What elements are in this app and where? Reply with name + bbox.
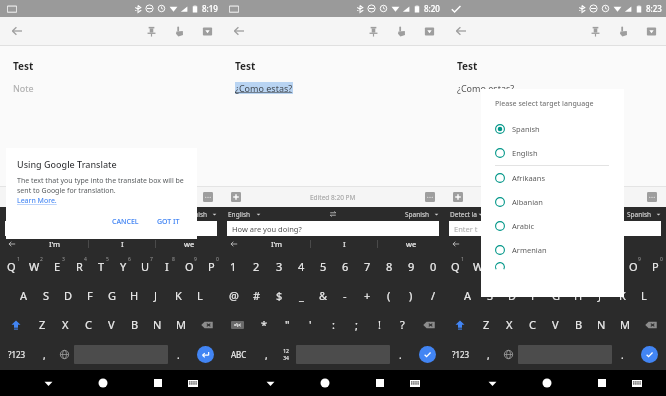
button[interactable]: 5 bbox=[312, 252, 334, 281]
button[interactable]: Enter bbox=[188, 339, 222, 370]
button[interactable]: Backspace bbox=[636, 310, 666, 339]
button[interactable]: Back bbox=[8, 22, 26, 40]
button[interactable]: ! bbox=[368, 310, 391, 339]
button[interactable]: ?123 bbox=[0, 339, 34, 370]
button[interactable]: 0 bbox=[422, 252, 444, 281]
button[interactable]: F bbox=[523, 281, 545, 310]
button[interactable]: 2 bbox=[245, 252, 268, 281]
button[interactable]: Back bbox=[257, 370, 283, 396]
button[interactable]: . bbox=[168, 339, 188, 370]
button[interactable]: ( bbox=[378, 281, 400, 310]
button[interactable]: X bbox=[498, 310, 521, 339]
button[interactable]: Add bbox=[451, 190, 465, 204]
button[interactable]: Backspace bbox=[414, 310, 444, 339]
button[interactable]: Arabic bbox=[495, 214, 624, 238]
button[interactable]: Language bbox=[498, 339, 518, 370]
button[interactable]: Numbers bbox=[276, 339, 296, 370]
button[interactable]: V bbox=[100, 310, 123, 339]
button[interactable]: we bbox=[156, 236, 222, 252]
button[interactable]: English bbox=[228, 210, 251, 219]
button[interactable]: - bbox=[334, 281, 356, 310]
button[interactable]: Recents bbox=[145, 370, 171, 396]
button[interactable]: W bbox=[23, 252, 46, 281]
button[interactable]: Reminder bbox=[614, 22, 632, 40]
button[interactable]: Learn More. bbox=[17, 196, 57, 206]
button[interactable]: / bbox=[422, 281, 444, 310]
button[interactable]: P bbox=[200, 252, 222, 281]
button[interactable]: 1 bbox=[222, 252, 245, 281]
button[interactable]: R bbox=[68, 252, 90, 281]
button[interactable]: Enter t bbox=[449, 221, 661, 236]
button[interactable]: , bbox=[34, 339, 54, 370]
button[interactable]: E bbox=[490, 252, 512, 281]
button[interactable]: More options bbox=[423, 190, 437, 204]
button[interactable]: ? bbox=[391, 310, 414, 339]
button[interactable]: Armenian bbox=[495, 238, 624, 262]
button[interactable]: Back bbox=[479, 370, 505, 396]
button[interactable]: # bbox=[245, 281, 268, 310]
button[interactable]: Archive bbox=[642, 22, 660, 40]
button[interactable]: How are you doing? bbox=[5, 221, 217, 236]
button[interactable]: A bbox=[456, 281, 479, 310]
button[interactable]: B bbox=[123, 310, 146, 339]
button[interactable]: 9 bbox=[400, 252, 422, 281]
button[interactable]: A bbox=[12, 281, 35, 310]
button[interactable]: S bbox=[35, 281, 57, 310]
button[interactable]: ; bbox=[345, 310, 368, 339]
button[interactable]: L bbox=[189, 281, 211, 310]
button[interactable]: + bbox=[356, 281, 378, 310]
button[interactable]: T bbox=[90, 252, 112, 281]
button[interactable]: U bbox=[134, 252, 156, 281]
button[interactable]: X bbox=[54, 310, 77, 339]
button[interactable]: F bbox=[79, 281, 101, 310]
button[interactable]: . bbox=[390, 339, 410, 370]
button[interactable]: English bbox=[495, 141, 624, 165]
button[interactable]: H bbox=[123, 281, 145, 310]
button[interactable]: =\< bbox=[222, 310, 253, 339]
button[interactable]: W bbox=[467, 252, 490, 281]
button[interactable]: Z bbox=[475, 310, 498, 339]
button[interactable]: Back bbox=[230, 22, 248, 40]
button[interactable]: N bbox=[590, 310, 613, 339]
button[interactable]: . bbox=[612, 339, 632, 370]
button[interactable]: Y bbox=[112, 252, 134, 281]
button[interactable]: 8 bbox=[378, 252, 400, 281]
button[interactable]: Home bbox=[534, 370, 560, 396]
button[interactable]: 4 bbox=[290, 252, 312, 281]
button[interactable]: O bbox=[178, 252, 200, 281]
button[interactable]: Spanish bbox=[495, 117, 624, 141]
button[interactable]: : bbox=[322, 310, 345, 339]
button[interactable]: G bbox=[101, 281, 123, 310]
button[interactable]: H bbox=[567, 281, 589, 310]
button[interactable]: P bbox=[644, 252, 666, 281]
button[interactable]: Language bbox=[54, 339, 74, 370]
button[interactable]: B bbox=[567, 310, 590, 339]
button[interactable]: K bbox=[611, 281, 633, 310]
button[interactable]: 7 bbox=[356, 252, 378, 281]
button[interactable]: ' bbox=[299, 310, 322, 339]
button[interactable]: ) bbox=[400, 281, 422, 310]
button[interactable]: O bbox=[622, 252, 644, 281]
button[interactable]: J bbox=[589, 281, 611, 310]
button[interactable]: ABC bbox=[222, 339, 256, 370]
button[interactable]: Back bbox=[35, 370, 61, 396]
button[interactable]: Detect la bbox=[450, 210, 477, 219]
button[interactable]: G bbox=[545, 281, 567, 310]
button[interactable]: Spanish bbox=[183, 210, 208, 219]
button[interactable]: S bbox=[479, 281, 501, 310]
button[interactable]: V bbox=[544, 310, 567, 339]
button[interactable]: I bbox=[156, 252, 178, 281]
button[interactable]: Archive bbox=[420, 22, 438, 40]
button[interactable]: Q bbox=[0, 252, 23, 281]
button[interactable]: M bbox=[169, 310, 192, 339]
button[interactable]: R bbox=[512, 252, 534, 281]
button[interactable]: Done bbox=[410, 339, 444, 370]
button[interactable]: Switch keyboard bbox=[402, 370, 428, 396]
button[interactable]: M bbox=[613, 310, 636, 339]
button[interactable]: Spanish bbox=[405, 210, 430, 219]
